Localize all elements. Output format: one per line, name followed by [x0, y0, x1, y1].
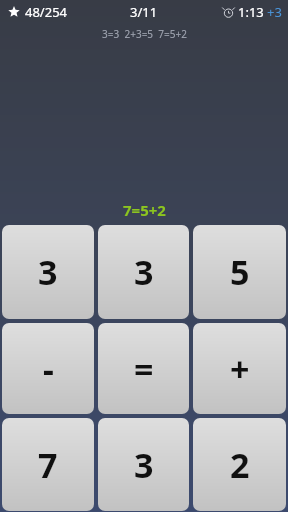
staticText: + — [230, 346, 250, 392]
button[interactable]: + — [193, 323, 286, 414]
staticText: 48/254 — [25, 3, 68, 21]
button[interactable]: 2 — [193, 418, 286, 511]
staticText: 1:13 — [238, 3, 264, 21]
button[interactable]: - — [2, 323, 94, 414]
staticText: = — [134, 346, 154, 392]
staticText: 2 — [230, 442, 250, 488]
staticText: 3/11 — [130, 3, 158, 21]
button[interactable]: 3 — [98, 418, 189, 511]
staticText: 7=5+2 — [123, 200, 166, 220]
button[interactable]: 5 — [193, 225, 286, 319]
button[interactable]: 7 — [2, 418, 94, 511]
staticText: 5 — [230, 249, 250, 295]
staticText: 3 — [134, 249, 154, 295]
staticText: 3=3 2+3=5 7=5+2 — [102, 27, 187, 41]
staticText: 7 — [38, 442, 58, 488]
staticText: 3 — [38, 249, 58, 295]
staticText: +3 — [267, 3, 282, 21]
button[interactable]: 3 — [98, 225, 189, 319]
button[interactable]: = — [98, 323, 189, 414]
staticText: 3 — [134, 442, 154, 488]
button[interactable]: 3 — [2, 225, 94, 319]
staticText: - — [43, 346, 54, 392]
